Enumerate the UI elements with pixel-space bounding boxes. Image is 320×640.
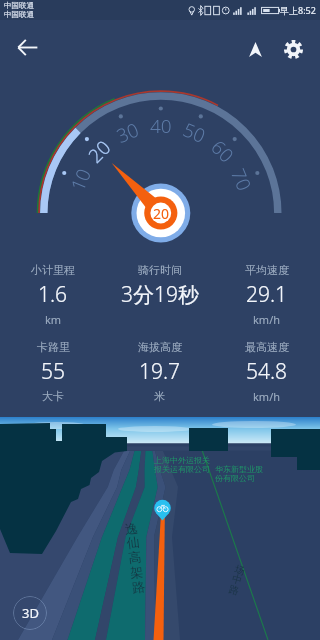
button[interactable]: Back [6,26,48,68]
staticText: 最高速度 [245,340,289,354]
staticText: 3分19秒 [121,280,199,309]
staticText: 场中路 [226,562,248,598]
button[interactable]: 3D view [13,596,47,630]
staticText: 54.8 [246,357,288,386]
staticText: 60 [208,134,239,165]
staticText: km [45,312,62,327]
staticText: 20 [153,204,170,223]
staticText: 平均速度 [245,263,289,277]
staticText: 海拔高度 [138,340,182,354]
staticText: 70 [229,165,257,193]
staticText: km/h [253,312,281,327]
staticText: 20 [82,134,113,165]
staticText: 大卡 [42,389,64,403]
staticText: 40 [150,113,172,135]
staticText: 早上8:52 [280,4,316,16]
button[interactable]: Settings [274,30,312,68]
button[interactable]: Navigate [236,30,274,68]
staticText: 中国联通 [4,1,34,10]
staticText: 上海中外运报关 报关运有限公司 [154,455,210,475]
staticText: 小计里程 [31,263,75,277]
staticText: 29.1 [246,280,288,309]
staticText: 华东新型业股 份有限公司 [215,464,263,483]
staticText: 3D [22,604,39,622]
staticText: 10 [65,165,93,193]
staticText: 骑行时间 [138,263,182,277]
staticText: km/h [253,389,281,404]
staticText: 中国联通 [4,10,34,19]
staticText: 卡路里 [37,340,70,354]
staticText: 1.6 [38,280,68,309]
staticText: 50 [181,117,209,145]
staticText: 19.7 [139,357,181,386]
staticText: 30 [113,117,141,145]
staticText: 55 [41,357,65,386]
staticText: 逸仙高架路 [121,519,148,597]
staticText: 米 [154,389,165,403]
